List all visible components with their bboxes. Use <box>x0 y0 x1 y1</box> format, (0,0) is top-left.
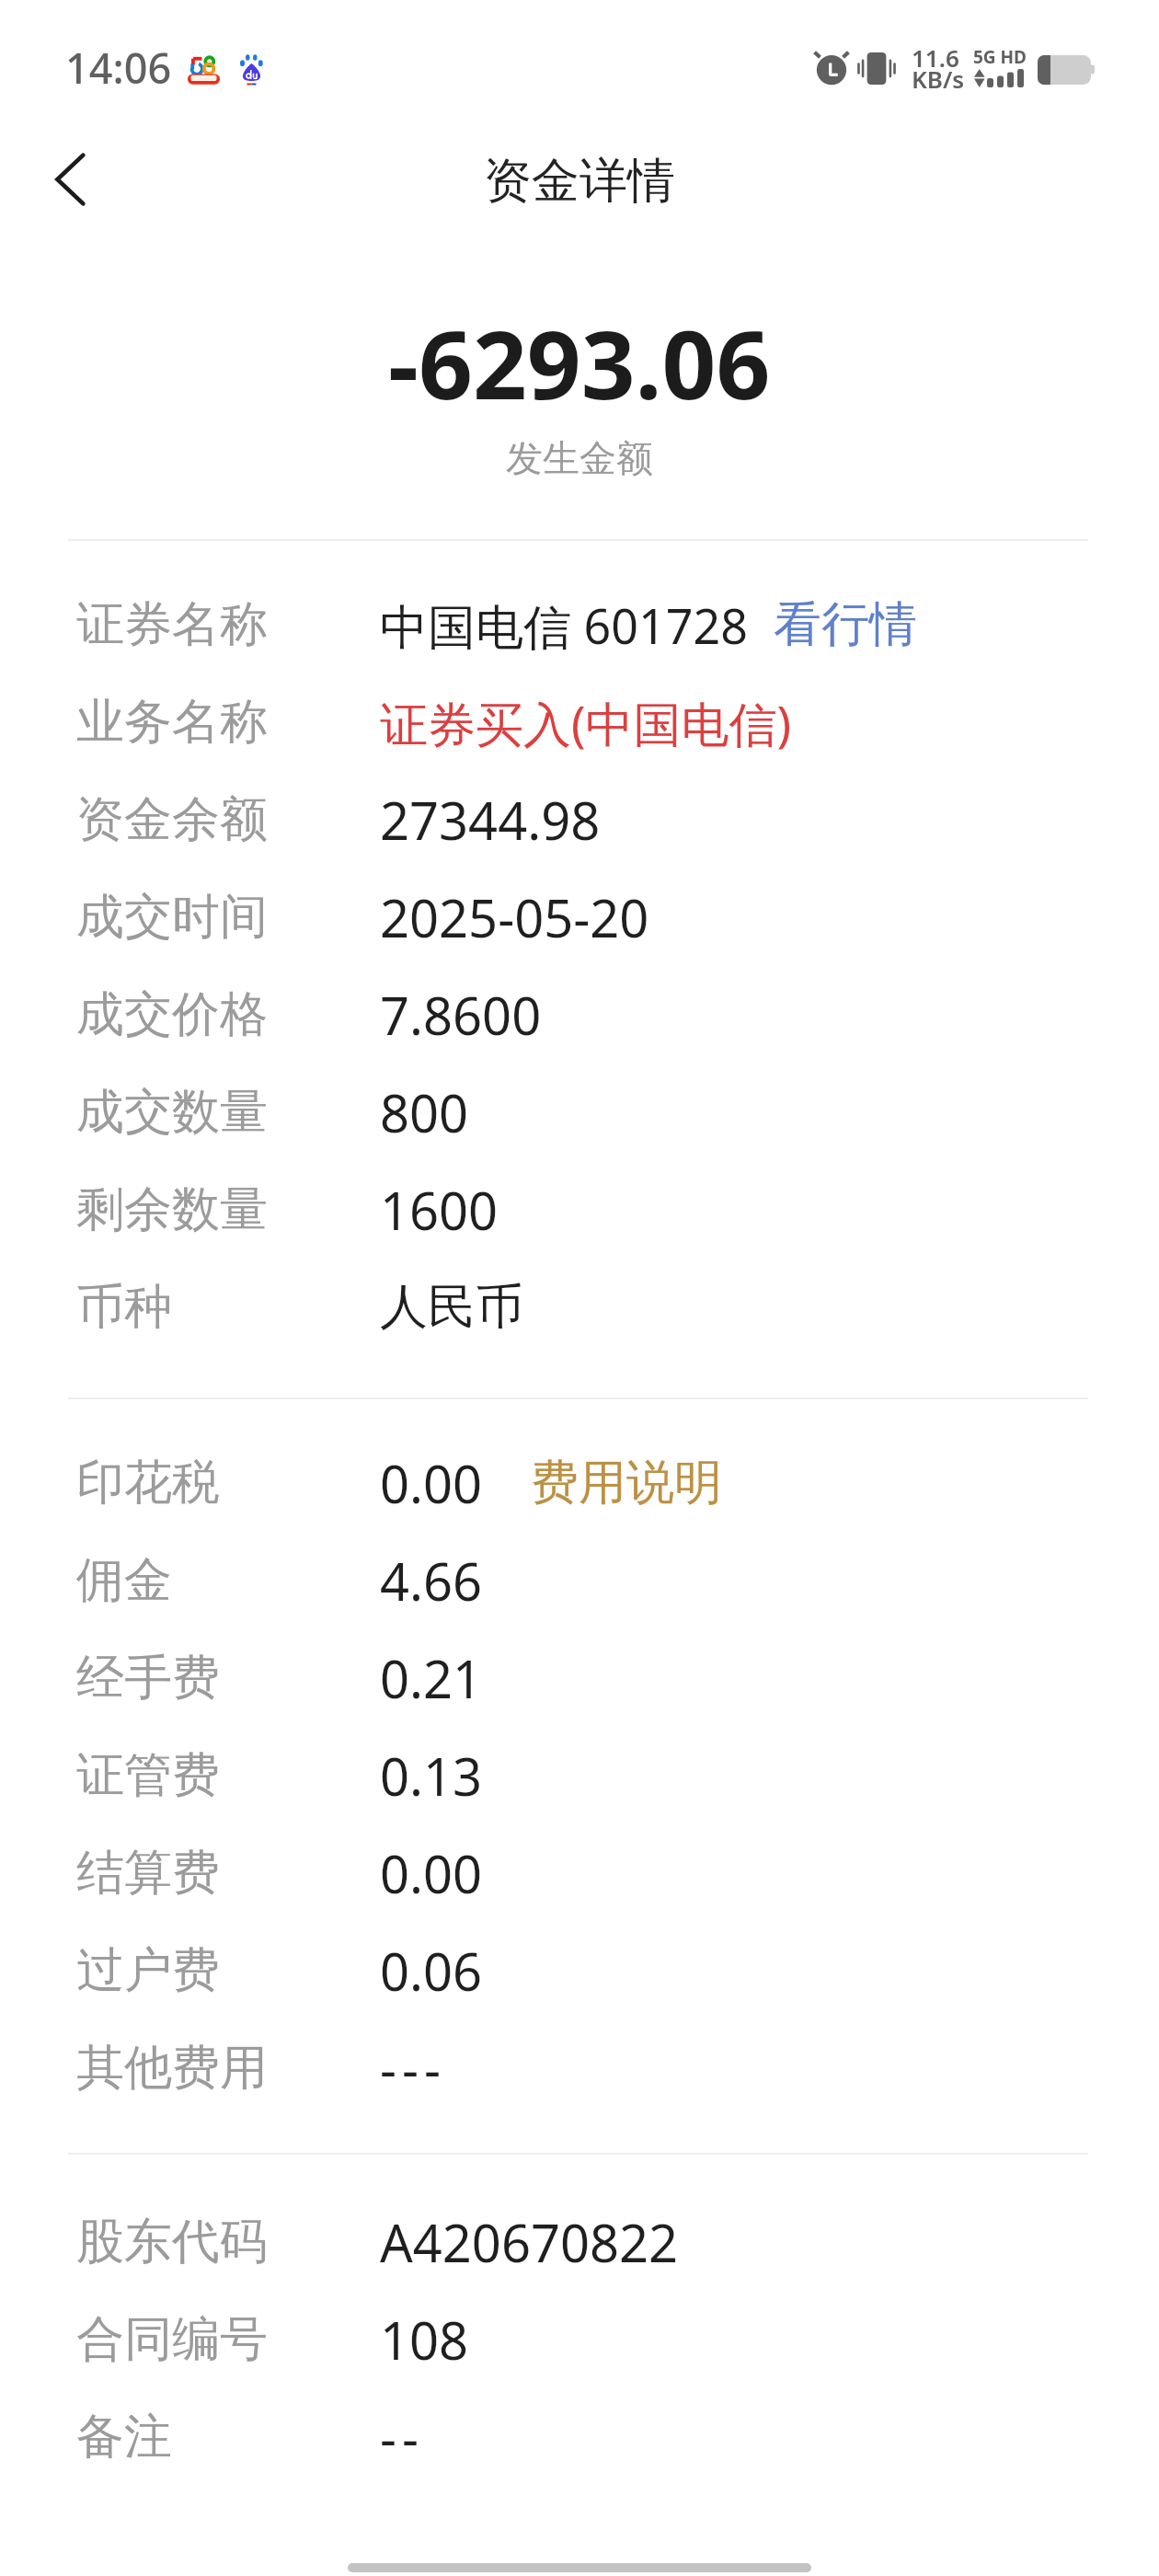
staticText: 股东代码 <box>76 2212 268 2272</box>
staticText: 发生金额 <box>506 435 653 481</box>
staticText: 看行情 <box>774 594 917 655</box>
staticText: 5G HD <box>973 45 1027 69</box>
staticText: 成交价格 <box>76 984 268 1045</box>
staticText: 0.00 <box>380 1448 483 1518</box>
staticText: 14:06 <box>65 40 172 96</box>
staticText: 800 <box>380 1077 469 1147</box>
staticText: 0.13 <box>380 1741 483 1811</box>
staticText: 1600 <box>380 1175 499 1245</box>
staticText: 币种 <box>76 1277 172 1338</box>
staticText: 4.66 <box>380 1546 483 1616</box>
staticText: 0.00 <box>380 1838 483 1908</box>
staticText: 费用说明 <box>531 1453 722 1513</box>
staticText: 经手费 <box>76 1648 220 1708</box>
button[interactable]: Back <box>0 115 134 244</box>
staticText: 过户费 <box>76 1940 220 2001</box>
staticText: 11.6 <box>912 41 959 74</box>
staticText: --- <box>380 2033 447 2103</box>
staticText: 0.06 <box>380 1936 483 2006</box>
staticText: 证管费 <box>76 1745 220 1806</box>
staticText: KB/s <box>912 63 965 95</box>
staticText: 0.21 <box>380 1643 483 1713</box>
staticText: 资金余额 <box>76 789 268 850</box>
staticText: 资金详情 <box>484 151 675 212</box>
staticText: 证券名称 <box>76 594 268 655</box>
staticText: 结算费 <box>76 1843 220 1903</box>
staticText: 成交时间 <box>76 887 268 948</box>
staticText: 剩余数量 <box>76 1179 268 1240</box>
staticText: 证券买入(中国电信) <box>380 690 792 755</box>
staticText: 27344.98 <box>380 785 601 855</box>
staticText: A420670822 <box>380 2207 679 2277</box>
staticText: 业务名称 <box>76 692 268 753</box>
button[interactable]: 费用说明 <box>514 1434 739 1532</box>
staticText: 人民币 <box>380 1277 523 1338</box>
staticText: 备注 <box>76 2407 172 2467</box>
staticText: 中国电信 601728 <box>380 592 748 658</box>
staticText: -- <box>380 2402 425 2472</box>
staticText: 108 <box>380 2305 469 2375</box>
staticText: 佣金 <box>76 1550 172 1611</box>
staticText: 2025-05-20 <box>380 882 649 952</box>
button[interactable]: 看行情 <box>757 576 934 673</box>
staticText: -6293.06 <box>388 298 771 427</box>
staticText: 合同编号 <box>76 2309 268 2370</box>
staticText: 印花税 <box>76 1453 220 1513</box>
staticText: 成交数量 <box>76 1082 268 1143</box>
staticText: 其他费用 <box>76 2038 268 2099</box>
staticText: 7.8600 <box>380 980 542 1050</box>
